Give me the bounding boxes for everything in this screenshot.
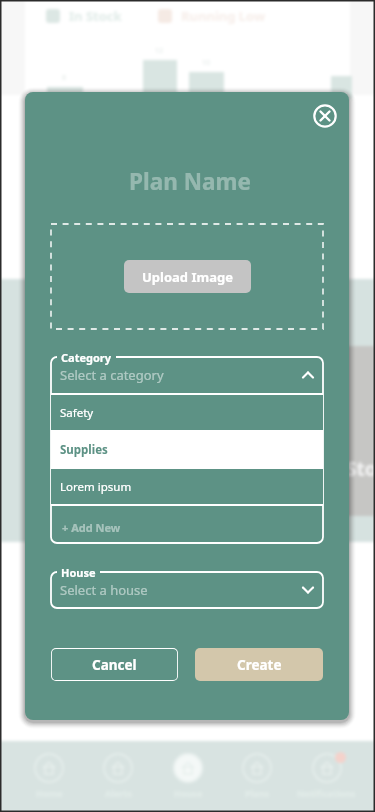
button[interactable]: Cancel bbox=[51, 648, 178, 681]
button[interactable]: Safety bbox=[51, 395, 323, 430]
staticText: Select a category bbox=[60, 366, 164, 384]
button[interactable]: Supplies bbox=[51, 432, 323, 467]
staticText: Lorem ipsum bbox=[60, 479, 132, 495]
button[interactable]: Upload Image bbox=[124, 260, 251, 293]
staticText: + Add New bbox=[62, 520, 121, 535]
staticText: Running Low bbox=[181, 7, 266, 25]
button[interactable]: Create bbox=[195, 648, 323, 681]
button[interactable]: Lorem ipsum bbox=[51, 469, 323, 504]
button[interactable]: Select a category bbox=[51, 357, 323, 393]
staticText: Category bbox=[61, 350, 112, 365]
staticText: Supplies bbox=[60, 442, 108, 458]
staticText: Create bbox=[237, 656, 282, 674]
button[interactable]: Select a house bbox=[51, 572, 323, 608]
staticText: Safety bbox=[60, 405, 94, 421]
staticText: Upload Image bbox=[142, 268, 233, 286]
staticText: House bbox=[61, 565, 96, 580]
staticText: Cancel bbox=[92, 656, 137, 674]
staticText: Stock bbox=[346, 456, 375, 482]
staticText: In Stock bbox=[69, 7, 122, 25]
button[interactable]: + Add New bbox=[51, 506, 323, 543]
staticText: Select a house bbox=[60, 581, 148, 599]
button[interactable]: House bbox=[154, 753, 222, 799]
button[interactable]: Notifications bbox=[292, 753, 360, 799]
staticText: Plan Name bbox=[28, 166, 349, 197]
button[interactable]: Close bbox=[309, 100, 341, 132]
